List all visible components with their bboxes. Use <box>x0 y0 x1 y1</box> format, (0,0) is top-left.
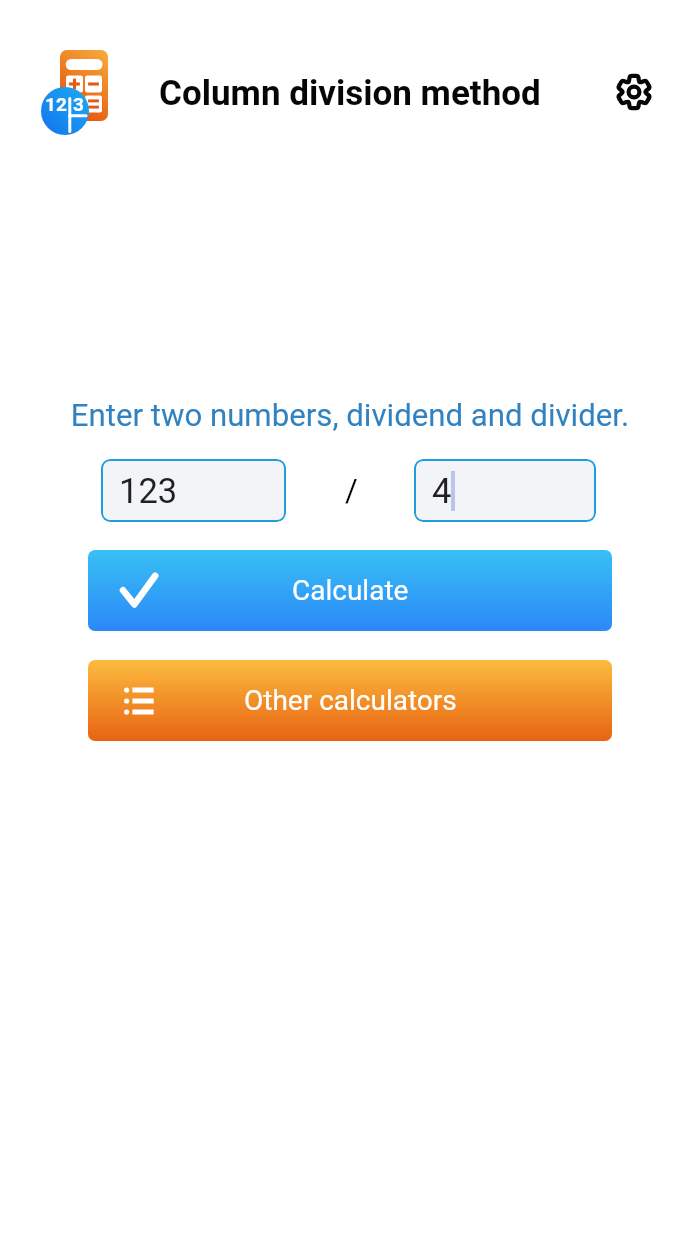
staticText: Other calculators <box>244 684 457 717</box>
staticText: Calculate <box>292 574 409 607</box>
staticText: 3 <box>73 93 84 115</box>
staticText: 4 <box>432 471 452 511</box>
staticText: 12 <box>45 93 67 115</box>
staticText: 123 <box>119 471 178 511</box>
button[interactable]: 4 <box>414 459 596 522</box>
button[interactable]: Other calculators <box>88 660 612 741</box>
button[interactable]: Settings <box>608 66 660 118</box>
staticText: / <box>345 472 358 508</box>
staticText: Column division method <box>159 73 541 114</box>
staticText: Enter two numbers, dividend and divider. <box>0 397 700 434</box>
button[interactable]: Calculate <box>88 550 612 631</box>
button[interactable]: 123 <box>101 459 286 522</box>
